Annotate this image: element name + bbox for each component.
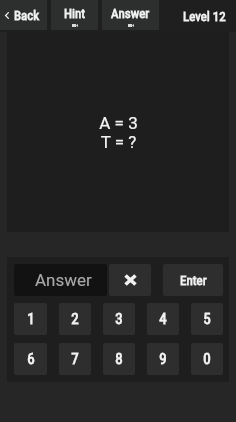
button[interactable]: 6 [14,343,47,375]
staticText: 3 [115,310,123,328]
button[interactable]: 0 [191,343,223,375]
button[interactable]: Enter [163,264,223,296]
button[interactable]: 3 [103,303,135,335]
button[interactable]: 5 [191,303,223,335]
button[interactable]: Clear [109,264,151,296]
button[interactable]: Answer [14,264,107,296]
button[interactable]: 7 [59,343,91,375]
button[interactable]: Answer [102,0,159,30]
button[interactable]: 8 [103,343,135,375]
button[interactable]: 2 [59,303,91,335]
staticText: Enter [180,273,207,288]
staticText: 0 [203,350,211,368]
staticText: A = 3 T = ? [99,113,138,152]
button[interactable]: Hint [51,0,98,30]
staticText: Hint [64,6,86,21]
staticText: 2 [71,310,79,328]
staticText: Level 12 [183,9,226,24]
staticText: Answer [111,6,150,21]
staticText: 5 [203,310,211,328]
staticText: 6 [27,350,35,368]
staticText: Answer [35,270,92,290]
button[interactable]: 9 [147,343,179,375]
staticText: 4 [159,310,167,328]
button[interactable]: 1 [14,303,47,335]
staticText: Back [14,8,40,23]
staticText: 9 [159,350,167,368]
staticText: 1 [27,310,35,328]
button[interactable]: Back [0,0,47,30]
button[interactable]: 4 [147,303,179,335]
staticText: 8 [115,350,123,368]
staticText: 7 [71,350,79,368]
